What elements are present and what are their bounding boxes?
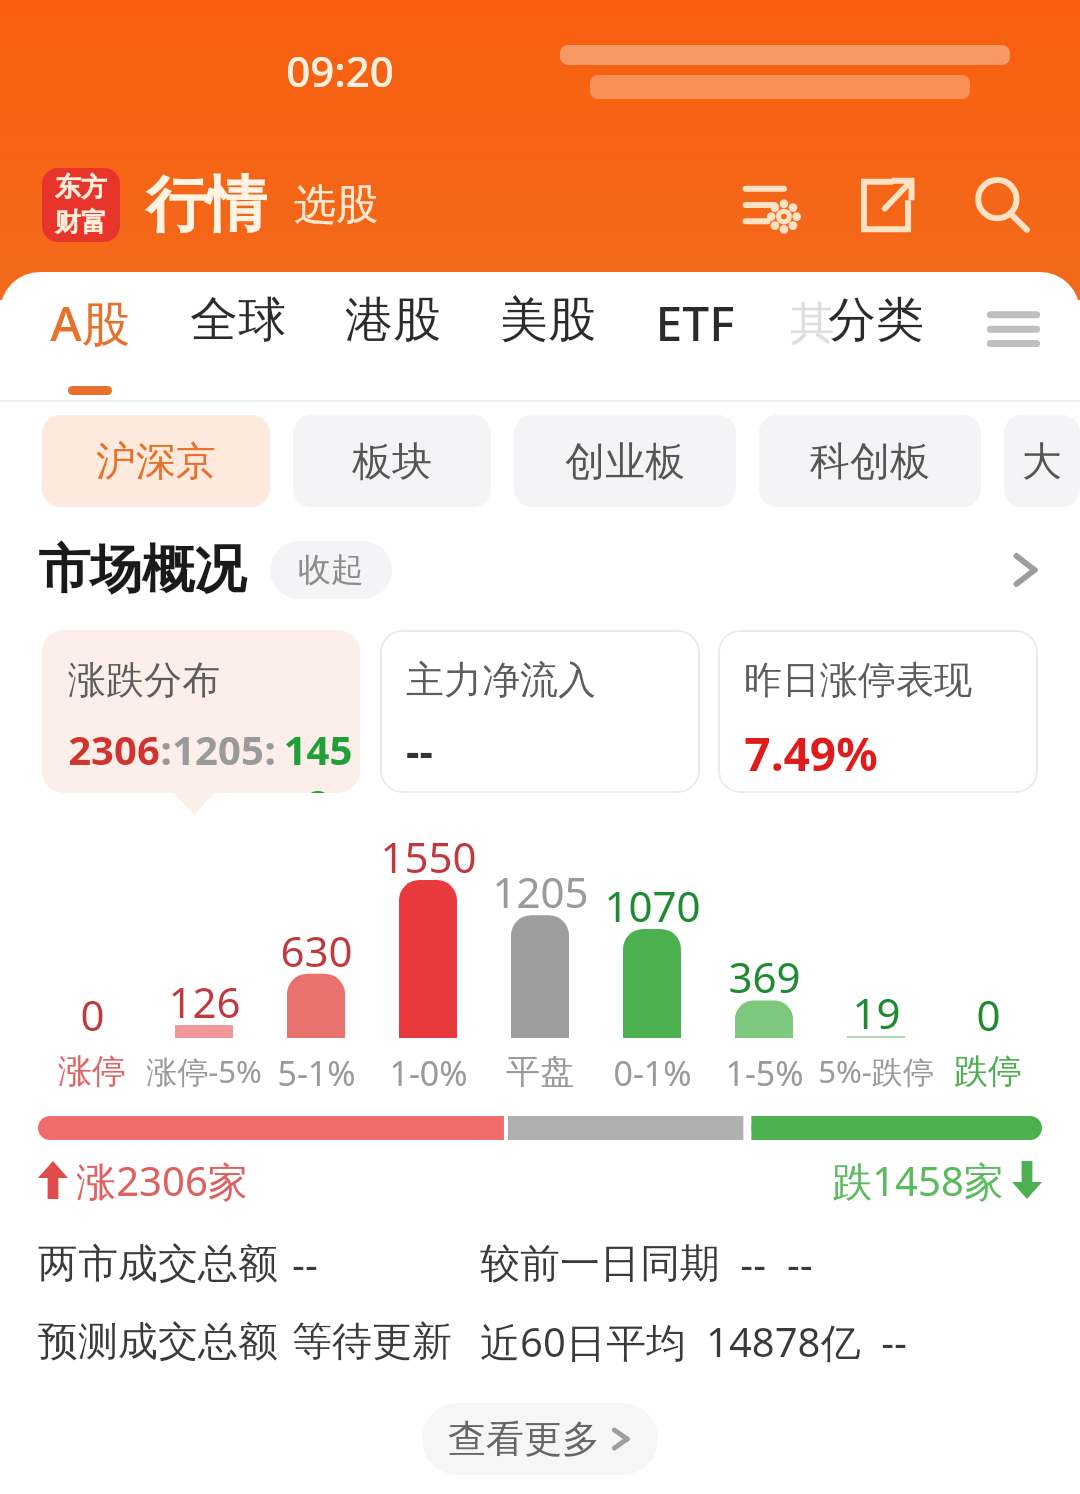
staticText: 查看更多 (448, 1415, 600, 1463)
staticText: 5%-跌停 (818, 1050, 934, 1092)
staticText: 14878亿 -- (706, 1314, 907, 1369)
staticText: : (264, 722, 276, 776)
staticText: 东方 (55, 171, 107, 204)
staticText: 两市成交总额 (38, 1238, 278, 1288)
staticText: 涨2306家 (76, 1153, 248, 1208)
staticText: 选股 (294, 179, 378, 232)
staticText: 其 (790, 296, 834, 351)
button[interactable]: 大 (1004, 415, 1080, 507)
button[interactable]: 美股 (500, 290, 596, 380)
staticText: -- -- (740, 1236, 813, 1290)
staticText: 1-0% (389, 1050, 468, 1096)
button[interactable]: 港股 (345, 290, 441, 380)
staticText: ETF (655, 290, 735, 355)
staticText: 369 (728, 948, 801, 1005)
staticText: 较前一日同期 (480, 1238, 720, 1288)
staticText: 630 (280, 922, 353, 979)
staticText: 科创板 (810, 436, 930, 486)
staticText: A股 (50, 290, 130, 356)
staticText: 涨跌分布 (68, 656, 220, 704)
staticText: 09:20 (286, 42, 394, 99)
staticText: 平盘 (506, 1050, 574, 1093)
staticText: 1550 (380, 828, 477, 885)
button[interactable]: 收起 (298, 541, 364, 599)
button[interactable]: More tabs (982, 298, 1052, 358)
button[interactable]: 选股 (294, 179, 378, 232)
button[interactable]: 主力净流入 (380, 630, 700, 793)
staticText: 市场概况 (38, 537, 246, 603)
staticText: 财富 (55, 206, 107, 239)
staticText: 7.49% (744, 722, 878, 785)
staticText: 美股 (500, 290, 596, 350)
staticText: 1205 (492, 863, 589, 920)
staticText: 行情 (146, 167, 266, 243)
button[interactable]: Share (850, 169, 922, 241)
button[interactable]: 昨日涨停表现 (718, 630, 1038, 793)
button[interactable]: 市场概况 (38, 520, 1042, 620)
button[interactable]: 板块 (293, 415, 491, 507)
button[interactable]: A股 (50, 290, 130, 380)
staticText: 1205 (172, 722, 264, 776)
staticText: -- (406, 722, 433, 779)
staticText: 收起 (298, 549, 364, 591)
staticText: 昨日涨停表现 (744, 656, 972, 704)
staticText: 5-1% (277, 1050, 356, 1096)
staticText: 1070 (604, 877, 701, 934)
button[interactable]: 科创板 (759, 415, 981, 507)
staticText: 等待更新 (292, 1316, 452, 1366)
button[interactable]: 沪深京 (42, 415, 270, 507)
staticText: 板块 (352, 436, 432, 486)
staticText: 创业板 (565, 436, 685, 486)
staticText: : (160, 722, 172, 776)
staticText: 0 (976, 986, 1001, 1043)
staticText: 全球 (190, 290, 286, 350)
staticText: 2306 (68, 722, 160, 776)
staticText: 涨停 (58, 1050, 126, 1093)
staticText: 1458 (276, 722, 360, 793)
staticText: 大 (1022, 436, 1062, 486)
staticText: 分类 (828, 290, 924, 350)
staticText: 0-1% (613, 1050, 692, 1096)
staticText: 跌1458家 (832, 1153, 1004, 1208)
staticText: 预测成交总额 (38, 1316, 278, 1366)
button[interactable]: Filter settings (734, 169, 806, 241)
staticText: 1-5% (725, 1050, 804, 1096)
staticText: 沪深京 (96, 436, 216, 486)
staticText: 主力净流入 (406, 656, 596, 704)
button[interactable]: 东方财富 (42, 168, 120, 242)
staticText: 涨停-5% (146, 1050, 262, 1092)
staticText: 19 (852, 984, 901, 1041)
button[interactable]: ETF (655, 290, 735, 380)
button[interactable]: 全球 (190, 290, 286, 380)
staticText: -- (292, 1236, 318, 1290)
staticText: 0 (80, 986, 105, 1043)
staticText: 跌停 (954, 1050, 1022, 1093)
button[interactable]: 分类 (828, 290, 924, 380)
staticText: 港股 (345, 290, 441, 350)
button[interactable]: 涨跌分布 (42, 630, 360, 793)
staticText: 近60日平均 (480, 1314, 686, 1369)
button[interactable]: 创业板 (514, 415, 736, 507)
button[interactable]: Search (966, 169, 1038, 241)
staticText: 126 (168, 973, 241, 1030)
button[interactable]: 查看更多 (422, 1403, 658, 1475)
